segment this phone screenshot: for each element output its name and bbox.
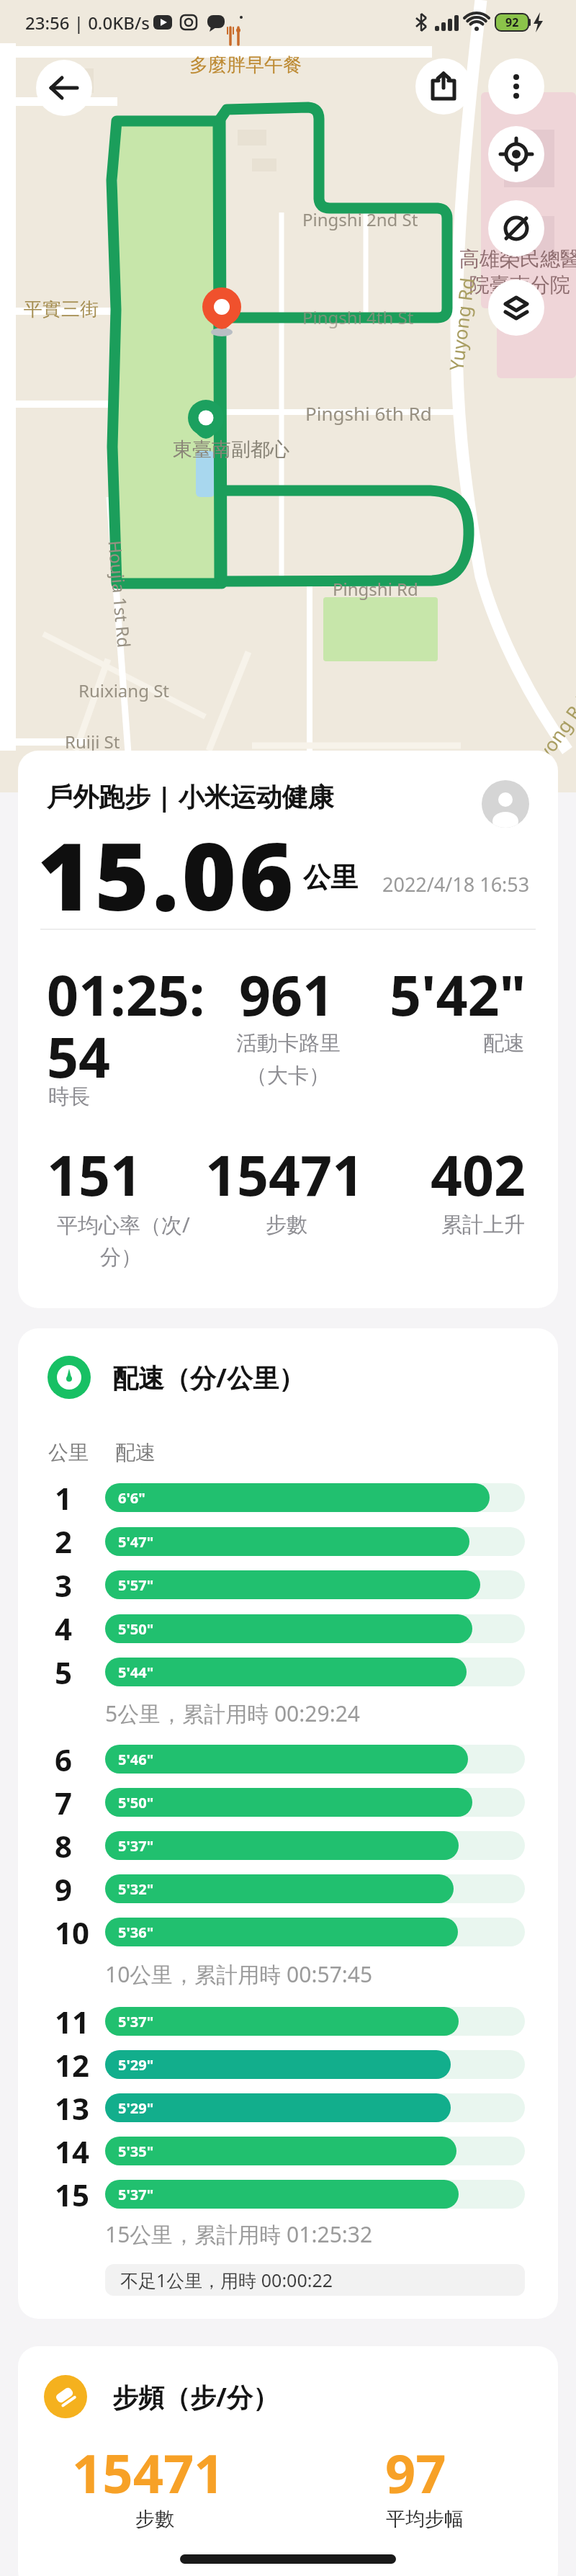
staticText: 15: [55, 2174, 90, 2215]
staticText: Houjia 1st Rd: [103, 539, 136, 649]
staticText: 54: [47, 1019, 111, 1094]
staticText: 12: [55, 2044, 90, 2085]
button[interactable]: [488, 279, 544, 336]
staticText: 步數: [135, 2507, 174, 2531]
staticText: Pingshi 6th Rd: [305, 401, 432, 426]
staticText: 平均心率（次/: [57, 1210, 190, 1239]
staticText: 9: [55, 1869, 73, 1910]
staticText: 活動卡路里: [236, 1030, 341, 1057]
button[interactable]: [415, 58, 472, 115]
staticText: 6'6": [118, 1488, 145, 1508]
staticText: 15.06: [37, 811, 297, 938]
staticText: 步數: [266, 1212, 307, 1238]
staticText: 時長: [48, 1083, 90, 1110]
button[interactable]: [36, 60, 92, 116]
staticText: 平實三街: [24, 298, 99, 321]
staticText: Pingshi 4th St: [302, 305, 414, 329]
staticText: 5'37": [118, 2185, 154, 2204]
staticText: 14: [55, 2131, 90, 2172]
staticText: Ruixiang St: [78, 679, 169, 702]
staticText: 7: [55, 1782, 73, 1823]
button[interactable]: [488, 126, 544, 182]
staticText: 15471: [72, 2436, 225, 2509]
staticText: 97: [385, 2436, 446, 2509]
staticText: Yuyong Rd: [443, 276, 479, 372]
staticText: 5公里，累計用時 00:29:24: [105, 1699, 360, 1728]
staticText: 5'32": [118, 1879, 154, 1899]
staticText: 5'44": [118, 1663, 154, 1682]
button[interactable]: [482, 780, 529, 828]
staticText: 5'36": [118, 1923, 154, 1942]
staticText: 23:56 | 0.0KB/s: [25, 11, 150, 35]
staticText: 92: [505, 14, 519, 30]
staticText: 平均步幅: [386, 2507, 464, 2531]
staticText: 01:25:: [47, 957, 205, 1032]
staticText: 6: [55, 1739, 73, 1780]
staticText: Pingshi Rd: [333, 577, 418, 601]
staticText: 公里: [303, 860, 358, 895]
staticText: 5'42": [390, 957, 526, 1032]
staticText: 分）: [100, 1244, 142, 1271]
staticText: 東臺南副都心: [173, 437, 289, 462]
staticText: 高雄榮民總醫: [459, 246, 576, 272]
staticText: 10公里，累計用時 00:57:45: [105, 1959, 373, 1989]
staticText: 3: [55, 1565, 73, 1606]
staticText: 402: [431, 1137, 526, 1212]
staticText: 5: [55, 1652, 73, 1693]
button[interactable]: [488, 200, 544, 256]
staticText: 13: [55, 2088, 90, 2129]
staticText: 2022/4/18 16:53: [382, 871, 530, 898]
staticText: 4: [55, 1608, 73, 1649]
staticText: 2: [55, 1521, 73, 1562]
staticText: 10: [55, 1912, 90, 1953]
staticText: 5'47": [118, 1532, 154, 1552]
staticText: 151: [47, 1137, 143, 1212]
staticText: 15公里，累計用時 01:25:32: [105, 2219, 373, 2249]
staticText: 5'35": [118, 2142, 154, 2161]
staticText: 11: [55, 2001, 90, 2042]
staticText: 5'57": [118, 1575, 154, 1595]
staticText: （大卡）: [246, 1063, 330, 1089]
staticText: 戶外跑步 | 小米运动健康: [47, 779, 334, 814]
staticText: 5'29": [118, 2055, 154, 2075]
staticText: 累計上升: [441, 1212, 525, 1238]
staticText: 院臺南分院: [469, 272, 570, 298]
staticText: 5'46": [118, 1750, 154, 1769]
staticText: 5'37": [118, 1836, 154, 1856]
staticText: 5'29": [118, 2098, 154, 2118]
button[interactable]: [488, 58, 544, 115]
staticText: 8: [55, 1825, 73, 1866]
staticText: Ruiji St: [65, 730, 120, 753]
staticText: 15471: [205, 1137, 364, 1212]
staticText: 步頻（步/分）: [112, 2379, 279, 2415]
staticText: 961: [239, 957, 335, 1032]
staticText: 1: [55, 1477, 73, 1519]
staticText: 5'37": [118, 2012, 154, 2031]
staticText: 公里: [48, 1440, 89, 1465]
staticText: Yuyong Rd: [519, 691, 576, 782]
staticText: 配速: [115, 1440, 156, 1465]
staticText: Pingshi 2nd St: [302, 207, 418, 231]
staticText: 多麼胖早午餐: [189, 53, 302, 77]
staticText: 5'50": [118, 1793, 154, 1812]
staticText: 5'50": [118, 1619, 154, 1639]
staticText: 配速（分/公里）: [112, 1360, 305, 1395]
staticText: 不足1公里，用時 00:00:22: [120, 2268, 333, 2292]
staticText: 配速: [483, 1030, 525, 1057]
